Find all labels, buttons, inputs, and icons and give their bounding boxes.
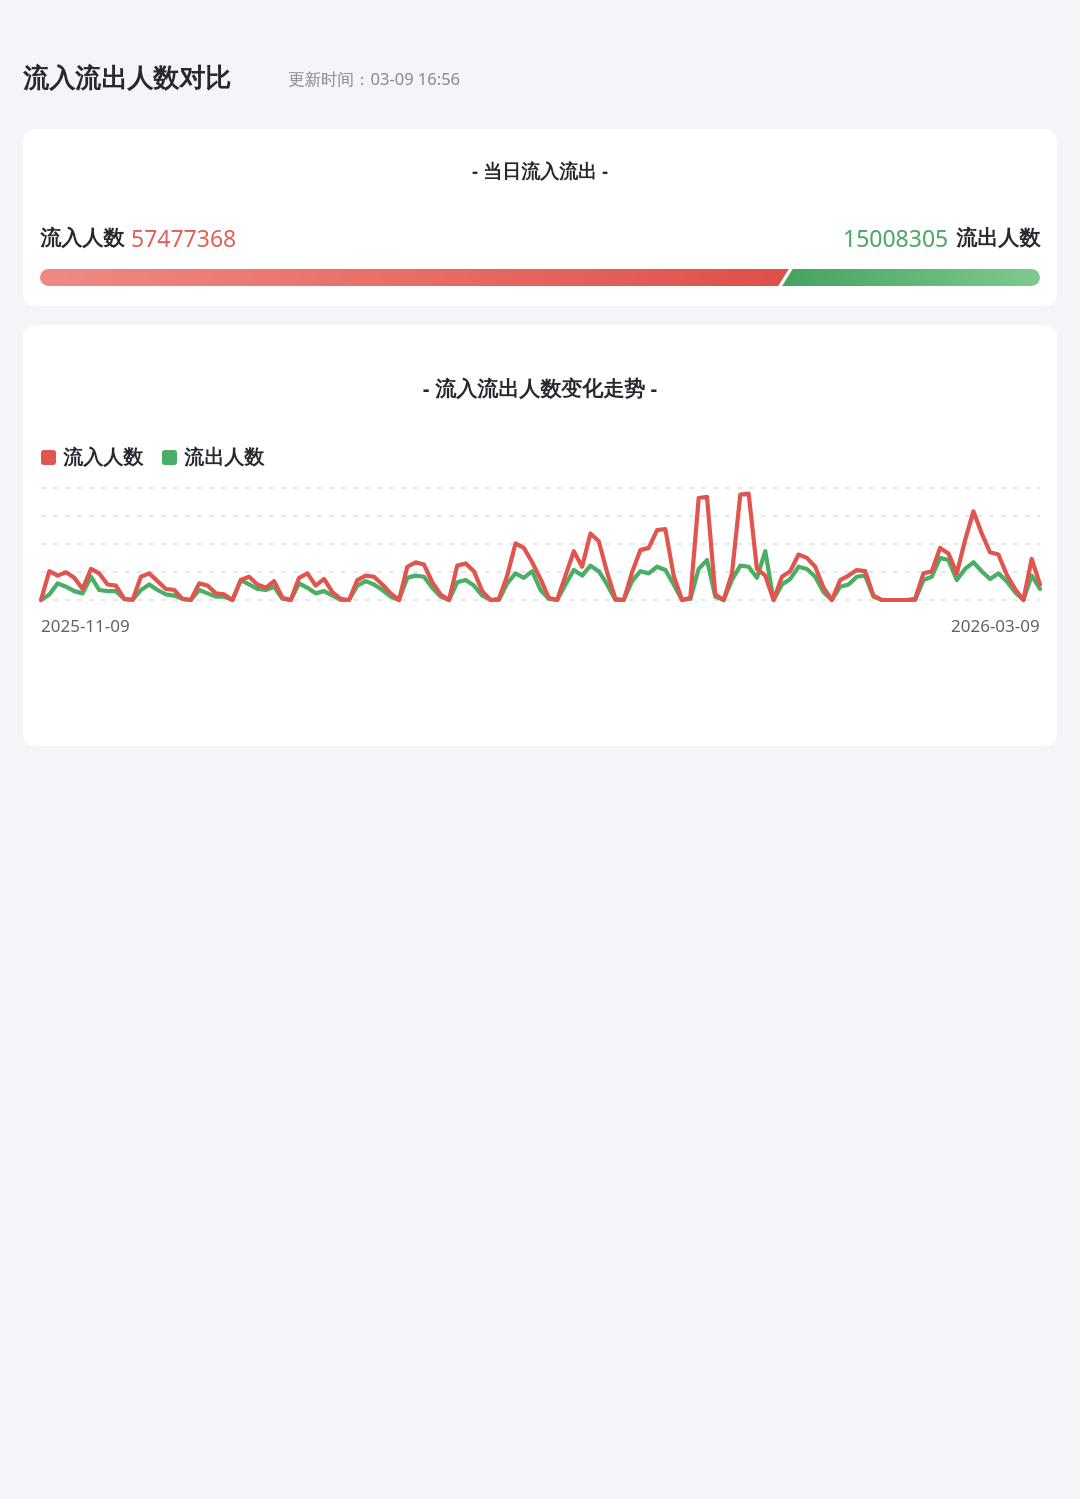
button[interactable]: - 当日流入流出 - (23, 129, 1057, 306)
staticText: 流出人数 (956, 225, 1040, 251)
staticText: - 当日流入流出 - (23, 158, 1057, 184)
staticText: 更新时间：03-09 16:56 (288, 67, 461, 90)
staticText: 流出人数 (184, 445, 264, 470)
staticText: 流入流出人数对比 (23, 62, 231, 95)
staticText: 2026-03-09 (951, 614, 1040, 637)
staticText: - 流入流出人数变化走势 - (23, 374, 1057, 403)
button[interactable]: - 流入流出人数变化走势 - (23, 325, 1057, 746)
staticText: 流入人数 (63, 445, 143, 470)
staticText: 57477368 (131, 222, 237, 253)
staticText: 流入人数 (40, 225, 124, 251)
staticText: 15008305 (843, 222, 949, 253)
other: 流入流出人数变化走势图 (41, 488, 1040, 600)
other: 流入流出比例 (40, 269, 1040, 286)
staticText: 2025-11-09 (41, 614, 130, 637)
